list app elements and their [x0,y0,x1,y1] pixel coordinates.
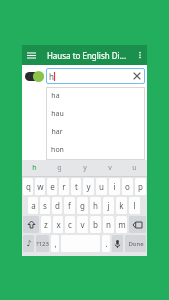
button[interactable]: z [41,216,51,233]
staticText: g [80,200,85,211]
button[interactable]: ?123 [36,235,49,252]
button[interactable]: Backspace [129,216,146,233]
button[interactable]: More options [133,45,147,65]
staticText: ?123 [36,240,49,248]
staticText: t [75,181,78,192]
staticText: g [57,163,62,173]
button[interactable]: Shift [23,216,39,233]
button[interactable]: d [52,197,62,214]
button[interactable]: j [103,197,114,214]
button[interactable]: o [122,178,133,195]
button[interactable]: hon [46,141,145,159]
staticText: hon [51,145,64,155]
button[interactable]: w [35,178,45,195]
staticText: y [86,181,91,192]
staticText: Hausa to English Di... [40,50,133,61]
button[interactable]: g [77,197,88,214]
staticText: a [31,200,36,211]
button[interactable]: . [102,235,110,252]
staticText: p [138,181,143,192]
button[interactable]: Clear text [132,71,142,81]
staticText: m [118,219,126,230]
button[interactable]: h [22,160,47,176]
button[interactable]: n [103,216,114,233]
staticText: har [51,127,63,137]
button[interactable]: l [129,197,140,214]
staticText: d [55,200,60,211]
staticText: u [132,163,137,173]
button[interactable]: s [40,197,50,214]
staticText: u [99,181,104,192]
button[interactable]: Swap languages [24,68,44,84]
button[interactable]: f [64,197,75,214]
staticText: j [107,200,110,211]
staticText: o [125,181,130,192]
staticText: b [93,219,98,230]
staticText: n [106,219,111,230]
button[interactable]: u [96,178,107,195]
staticText: hau [51,109,64,119]
staticText: i [113,181,116,192]
staticText: w [37,181,44,192]
button[interactable]: q [23,178,33,195]
staticText: h [49,71,54,82]
staticText: , [54,238,57,249]
button[interactable]: k [116,197,127,214]
staticText: l [133,200,136,211]
staticText: . [105,238,108,249]
button[interactable]: Emoji [23,235,34,252]
button[interactable]: i [109,178,120,195]
staticText: r [62,181,66,192]
button[interactable]: c [65,216,75,233]
button[interactable]: har [46,123,145,141]
staticText: y [83,163,87,173]
button[interactable]: a [28,197,38,214]
button[interactable]: v [97,160,122,176]
button[interactable]: m [116,216,127,233]
button[interactable]: r [59,178,69,195]
button[interactable]: Voice input [112,235,123,252]
button[interactable]: p [135,178,146,195]
staticText: v [80,219,85,230]
button[interactable]: , [51,235,59,252]
staticText: x [56,219,61,230]
button[interactable]: g [47,160,72,176]
button[interactable]: x [53,216,63,233]
button[interactable]: t [71,178,81,195]
button[interactable]: u [122,160,147,176]
staticText: v [108,163,112,173]
staticText: e [50,181,55,192]
staticText: h [32,163,37,173]
button[interactable]: e [47,178,57,195]
button[interactable]: Open navigation menu [22,45,40,65]
button[interactable]: ha [46,87,145,105]
staticText: h [93,200,98,211]
button[interactable]: v [77,216,88,233]
staticText: ha [51,91,60,101]
staticText: s [43,200,47,211]
button[interactable]: y [72,160,97,176]
staticText: k [119,200,124,211]
staticText: z [44,219,48,230]
button[interactable]: b [90,216,101,233]
button[interactable]: h [90,197,101,214]
staticText: q [26,181,31,192]
button[interactable]: Done [125,235,146,252]
staticText: c [68,219,72,230]
staticText: f [68,200,71,211]
button[interactable]: hau [46,105,145,123]
button[interactable]: y [83,178,94,195]
button[interactable]: h [46,68,145,84]
staticText: ♪ [26,239,32,248]
staticText: Done [128,240,144,248]
